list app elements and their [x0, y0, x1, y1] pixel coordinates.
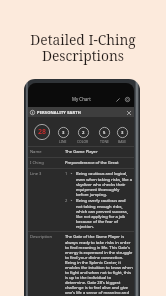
staticText: LINE: [59, 139, 67, 144]
button[interactable]: PERSONALITY EARTH: [28, 107, 134, 117]
button[interactable]: Name: [28, 147, 134, 157]
staticText: 1: [65, 171, 70, 177]
button[interactable]: Settings: [123, 95, 132, 104]
staticText: BASE: [118, 139, 127, 144]
staticText: TONE: [100, 139, 109, 144]
staticText: Preponderance of the Great: [65, 160, 119, 166]
staticText: 5: [103, 130, 106, 136]
button[interactable]: TONE: [99, 127, 110, 138]
staticText: 28: [38, 127, 47, 137]
button[interactable]: LINE: [58, 127, 69, 138]
button[interactable]: I Ching: [28, 158, 134, 168]
staticText: 3: [121, 130, 124, 136]
staticText: The Gate of the Game Player is always re…: [65, 234, 133, 294]
staticText: Being cautious and logical, even when ta…: [76, 171, 133, 197]
staticText: Line 3: [30, 171, 65, 177]
staticText: Detailed I-Ching Descriptions: [30, 30, 136, 65]
staticText: Being overly cautious and not taking eno…: [76, 198, 133, 229]
staticText: I Ching: [30, 160, 65, 166]
staticText: 2: [65, 198, 70, 204]
button[interactable]: BASE: [117, 127, 128, 138]
button[interactable]: Description: [28, 232, 134, 296]
staticText: 2: [82, 130, 85, 136]
button[interactable]: Gate 28: [34, 124, 50, 140]
button[interactable]: Close: [124, 108, 133, 117]
staticText: 3: [62, 130, 65, 136]
staticText: Description: [30, 234, 65, 240]
staticText: My Chart: [72, 96, 91, 102]
staticText: COLOR: [77, 139, 89, 144]
staticText: PERSONALITY EARTH: [37, 110, 81, 115]
staticText: Name: [30, 149, 65, 155]
button[interactable]: Line 3: [28, 169, 134, 231]
button[interactable]: Edit: [113, 95, 122, 104]
button[interactable]: COLOR: [78, 127, 89, 138]
staticText: The Game Player: [65, 149, 98, 155]
